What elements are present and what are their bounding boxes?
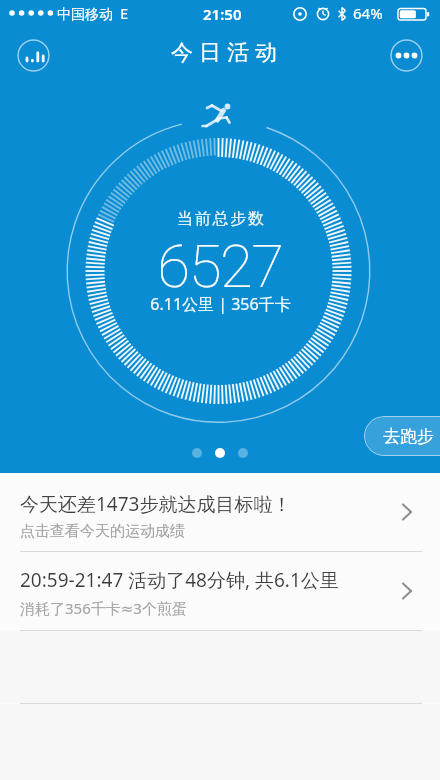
staticText: 点击查看今天的运动成绩 (20, 522, 185, 541)
staticText: 消耗了356千卡≈3个煎蛋 (20, 598, 187, 618)
staticText: 去跑步 (383, 426, 434, 447)
staticText: 今天还差1473步就达成目标啦！ (20, 491, 292, 517)
staticText: 当前总步数 (176, 209, 265, 229)
button[interactable]: 去跑步 (364, 416, 440, 456)
staticText: 中国移动 E (57, 4, 129, 23)
staticText: 6.11公里 | 356千卡 (150, 293, 291, 315)
button[interactable]: 20:59-21:47 活动了48分钟, 共6.1公里 (0, 552, 440, 630)
button[interactable] (390, 39, 423, 72)
staticText: 今日活动 (168, 39, 280, 67)
staticText: 20:59-21:47 活动了48分钟, 共6.1公里 (20, 567, 339, 593)
staticText: 64% (353, 3, 383, 23)
button[interactable] (17, 39, 50, 72)
staticText: 6527 (157, 231, 283, 301)
staticText: 21:50 (203, 4, 242, 24)
button[interactable]: 今天还差1473步就达成目标啦！ (0, 473, 440, 551)
